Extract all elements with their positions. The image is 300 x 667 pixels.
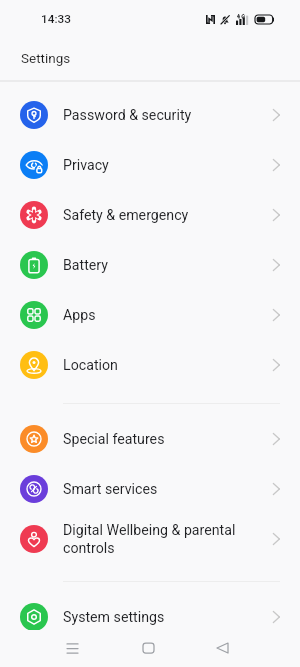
button[interactable]: Location: [0, 340, 300, 390]
staticText: System settings: [63, 609, 271, 626]
button[interactable]: Password & security: [0, 90, 300, 140]
button[interactable]: Apps: [0, 290, 300, 340]
button[interactable]: Digital Wellbeing & parental controls: [0, 514, 300, 564]
button[interactable]: Recent apps: [58, 634, 86, 662]
staticText: Battery: [63, 257, 271, 274]
staticText: Safety & emergency: [63, 207, 271, 224]
button[interactable]: Home: [134, 634, 162, 662]
button[interactable]: Safety & emergency: [0, 190, 300, 240]
staticText: Settings: [21, 50, 71, 66]
staticText: Smart services: [63, 481, 271, 498]
staticText: Digital Wellbeing & parental controls: [63, 522, 271, 556]
staticText: Special features: [63, 431, 271, 448]
button[interactable]: Special features: [0, 414, 300, 464]
staticText: Location: [63, 357, 271, 374]
button[interactable]: Battery: [0, 240, 300, 290]
button[interactable]: System settings: [0, 592, 300, 642]
button[interactable]: Privacy: [0, 140, 300, 190]
staticText: Apps: [63, 307, 271, 324]
button[interactable]: Back: [208, 634, 236, 662]
button[interactable]: Smart services: [0, 464, 300, 514]
staticText: 14:33: [41, 12, 71, 26]
staticText: Privacy: [63, 157, 271, 174]
staticText: Password & security: [63, 107, 271, 124]
